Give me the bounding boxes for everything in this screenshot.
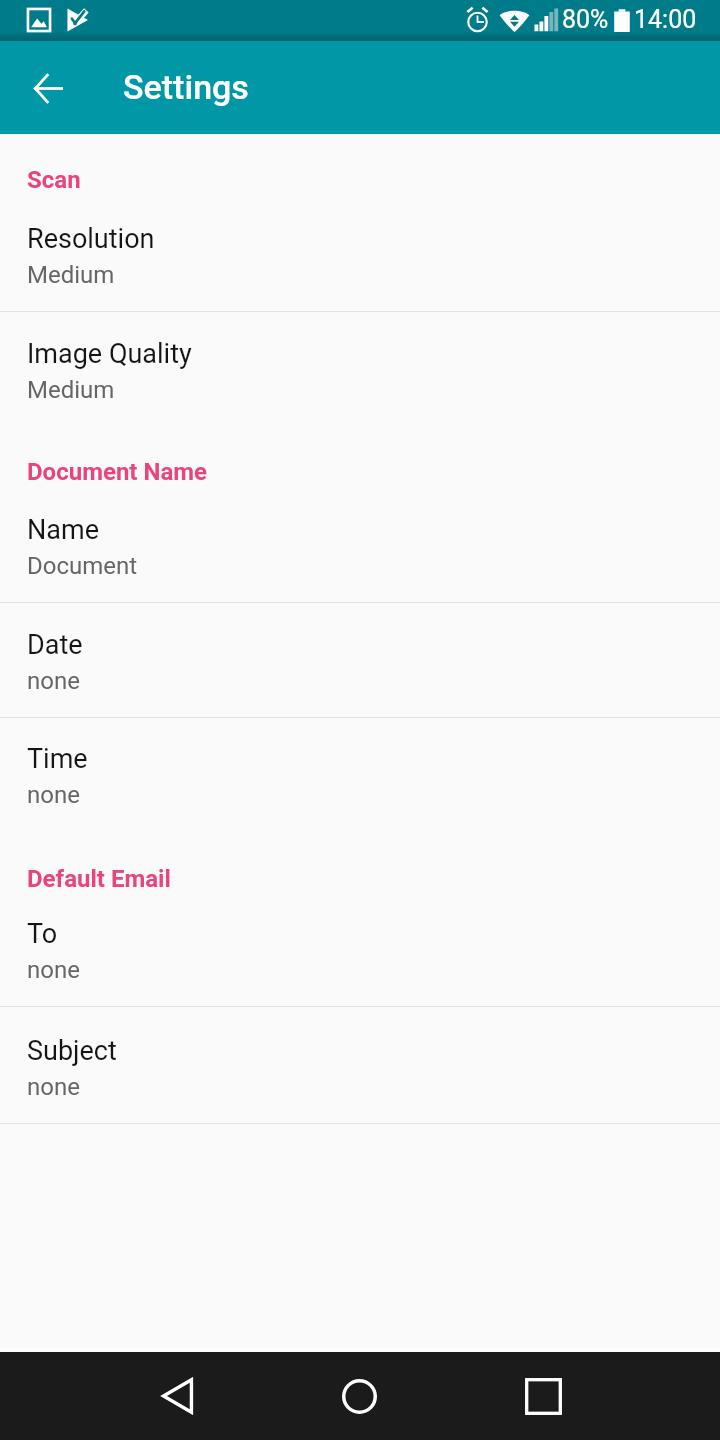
staticText: Resolution (27, 223, 155, 255)
staticText: none (27, 1073, 80, 1101)
button[interactable]: Time (0, 718, 720, 865)
staticText: Image Quality (27, 338, 192, 370)
button[interactable]: Image Quality (0, 312, 720, 458)
staticText: Time (27, 743, 88, 775)
button[interactable]: Home (313, 1352, 405, 1440)
button[interactable]: Back (22, 62, 74, 114)
staticText: Settings (123, 67, 249, 107)
button[interactable]: Recent apps (497, 1352, 589, 1440)
button[interactable]: Subject (0, 1007, 720, 1123)
staticText: Default Email (27, 865, 171, 893)
staticText: 80% (562, 5, 609, 34)
staticText: none (27, 781, 80, 809)
button[interactable]: To (0, 893, 720, 1006)
staticText: none (27, 956, 80, 984)
button[interactable]: Name (0, 486, 720, 602)
staticText: Medium (27, 376, 115, 404)
staticText: Subject (27, 1035, 117, 1067)
staticText: Date (27, 629, 83, 661)
staticText: Medium (27, 261, 115, 289)
staticText: none (27, 667, 80, 695)
staticText: 14:00 (634, 5, 697, 34)
button[interactable]: Resolution (0, 194, 720, 311)
staticText: Scan (27, 166, 81, 194)
staticText: Name (27, 514, 99, 546)
staticText: Document Name (27, 458, 207, 486)
button[interactable]: Date (0, 603, 720, 717)
button[interactable]: Back (131, 1352, 223, 1440)
staticText: Document (27, 552, 138, 580)
staticText: To (27, 918, 58, 950)
